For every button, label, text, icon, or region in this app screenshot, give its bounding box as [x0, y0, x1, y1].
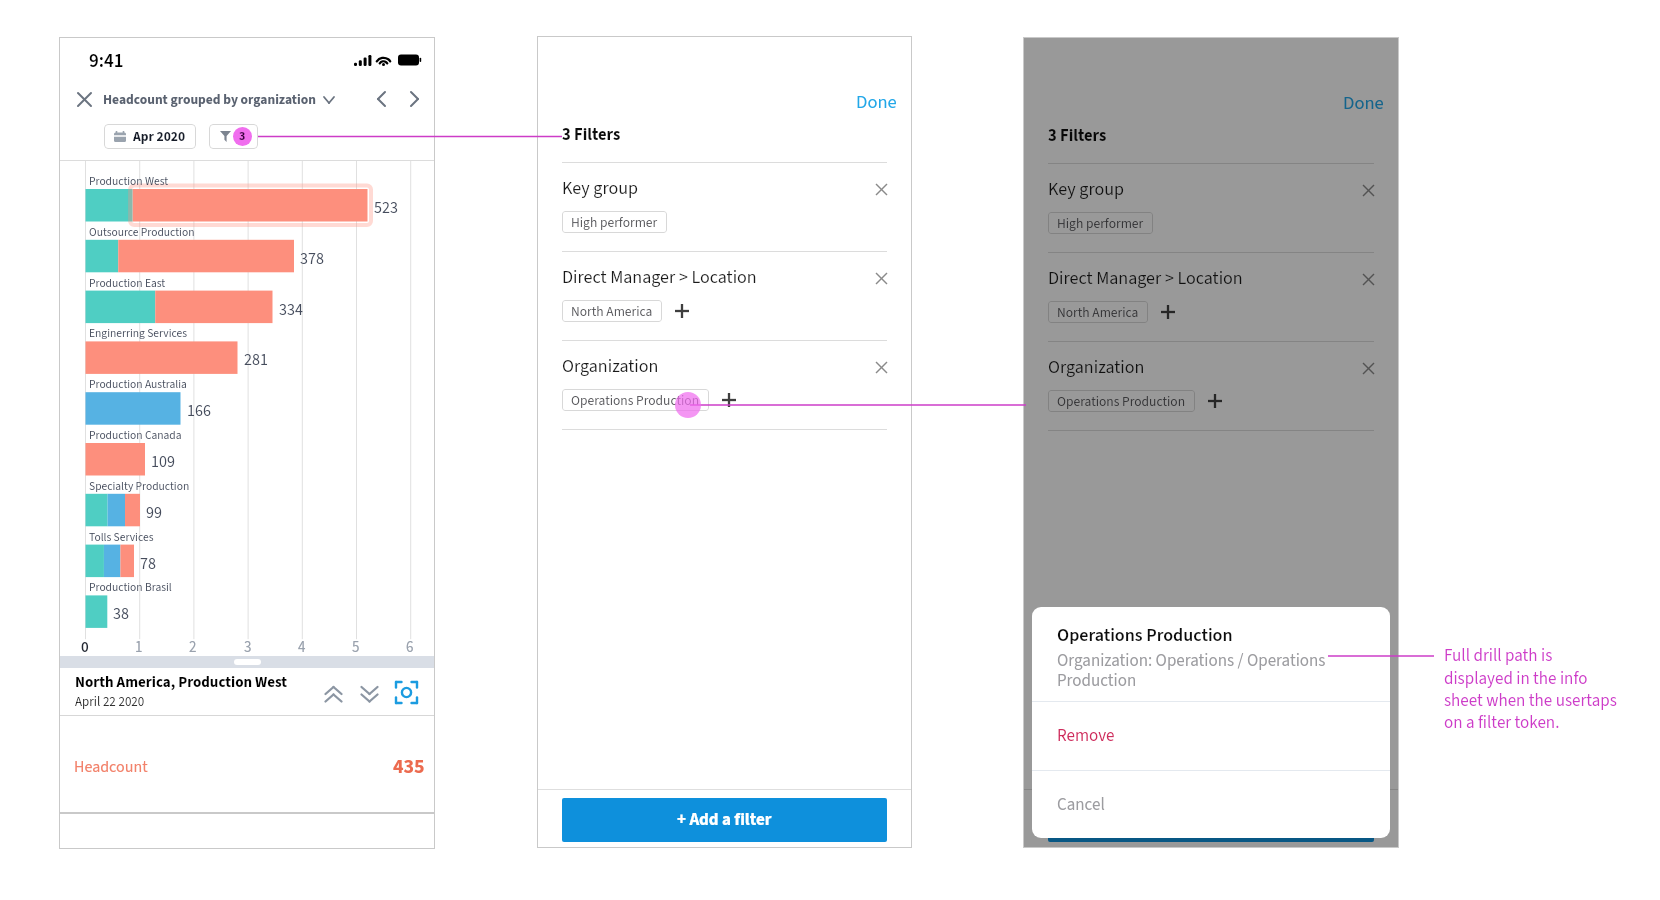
staticText: Direct Manager > Location — [1048, 266, 1243, 292]
button[interactable]: Previous — [369, 87, 393, 111]
staticText: Cancel — [1057, 793, 1105, 817]
staticText: 78 — [140, 553, 156, 576]
button[interactable]: Expand — [354, 677, 384, 707]
button[interactable]: Remove filter — [868, 354, 894, 380]
staticText: Enginerring Services — [89, 325, 188, 341]
button[interactable]: Cancel — [1032, 771, 1390, 838]
staticText: Full drill path is displayed in the info… — [1444, 644, 1617, 735]
staticText: 523 — [374, 197, 398, 220]
button[interactable]: Headcount grouped by organization — [103, 90, 334, 109]
staticText: Operations Production — [571, 391, 700, 410]
button[interactable]: Remove filter — [868, 265, 894, 291]
button[interactable]: Close — [71, 86, 97, 112]
staticText: 334 — [279, 299, 303, 322]
staticText: Tolls Services — [89, 529, 154, 545]
button[interactable]: Remove filter — [1355, 266, 1381, 292]
staticText: 5 — [352, 637, 360, 658]
staticText: 109 — [151, 451, 175, 474]
staticText: Outsource Production — [89, 224, 195, 240]
staticText: + Add a filter — [677, 808, 772, 832]
staticText: High performer — [571, 213, 658, 232]
button[interactable]: Remove filter — [868, 176, 894, 202]
button[interactable]: Apr 2020 — [104, 124, 196, 149]
button[interactable]: Add value — [671, 300, 693, 322]
staticText: High performer — [1057, 214, 1144, 233]
staticText: 6 — [406, 637, 414, 658]
staticText: Operations Production — [1057, 392, 1186, 411]
staticText: Operations Production — [1057, 623, 1233, 649]
staticText: Specialty Production — [89, 478, 190, 494]
button[interactable]: Next — [402, 87, 426, 111]
staticText: 38 — [113, 603, 129, 626]
staticText: 1 — [135, 637, 143, 658]
button[interactable]: Add value — [718, 389, 740, 411]
button[interactable]: High performer — [562, 211, 667, 233]
staticText: 99 — [146, 502, 162, 525]
button[interactable]: Done — [852, 87, 901, 117]
staticText: Apr 2020 — [133, 127, 186, 146]
button[interactable]: Remove filter — [1355, 177, 1381, 203]
button[interactable]: + Add a filter — [562, 798, 887, 842]
staticText: 2 — [189, 637, 197, 658]
staticText: Production West — [89, 173, 169, 189]
staticText: Headcount grouped by organization — [103, 90, 316, 109]
staticText: Key group — [1048, 177, 1124, 203]
staticText: North America — [1057, 303, 1139, 322]
staticText: 9:41 — [89, 48, 124, 75]
staticText: 166 — [187, 400, 211, 423]
button[interactable]: Remove — [1032, 702, 1390, 770]
button[interactable]: North America — [562, 300, 662, 322]
staticText: Remove — [1057, 724, 1115, 748]
staticText: Key group — [562, 176, 638, 202]
staticText: 3 Filters — [1048, 124, 1107, 147]
button[interactable]: High performer — [1048, 212, 1153, 234]
staticText: 3 Filters — [562, 123, 621, 146]
button[interactable]: Add value — [1157, 301, 1179, 323]
staticText: Done — [856, 89, 897, 115]
staticText: Organization — [562, 354, 659, 380]
button[interactable]: Collapse — [318, 677, 348, 707]
button[interactable]: Done — [1339, 88, 1388, 118]
staticText: Production Canada — [89, 427, 182, 443]
staticText: 0 — [81, 637, 89, 658]
staticText: 3 — [239, 128, 246, 145]
staticText: North America, Production West — [75, 672, 288, 693]
staticText: Organization: Operations / Operations Pr… — [1057, 649, 1368, 693]
staticText: North America — [571, 302, 653, 321]
staticText: Production Australia — [89, 376, 187, 392]
button[interactable]: Filters — [209, 124, 258, 149]
staticText: 281 — [244, 349, 268, 372]
button[interactable]: Operations Production — [1048, 390, 1195, 412]
button[interactable]: Add value — [1204, 390, 1226, 412]
button[interactable]: North America — [1048, 301, 1148, 323]
staticText: 4 — [298, 637, 306, 658]
staticText: Production Brasil — [89, 579, 172, 595]
staticText: 378 — [300, 248, 324, 271]
staticText: 3 — [244, 637, 252, 658]
button[interactable]: Remove filter — [1355, 355, 1381, 381]
staticText: Done — [1343, 90, 1384, 116]
staticText: Direct Manager > Location — [562, 265, 757, 291]
button[interactable]: Focus — [390, 676, 422, 708]
staticText: 435 — [393, 753, 425, 781]
staticText: Production East — [89, 275, 166, 291]
staticText: Headcount — [74, 756, 148, 779]
staticText: Organization — [1048, 355, 1145, 381]
staticText: April 22 2020 — [75, 693, 145, 712]
button[interactable]: Operations Production — [562, 389, 709, 411]
